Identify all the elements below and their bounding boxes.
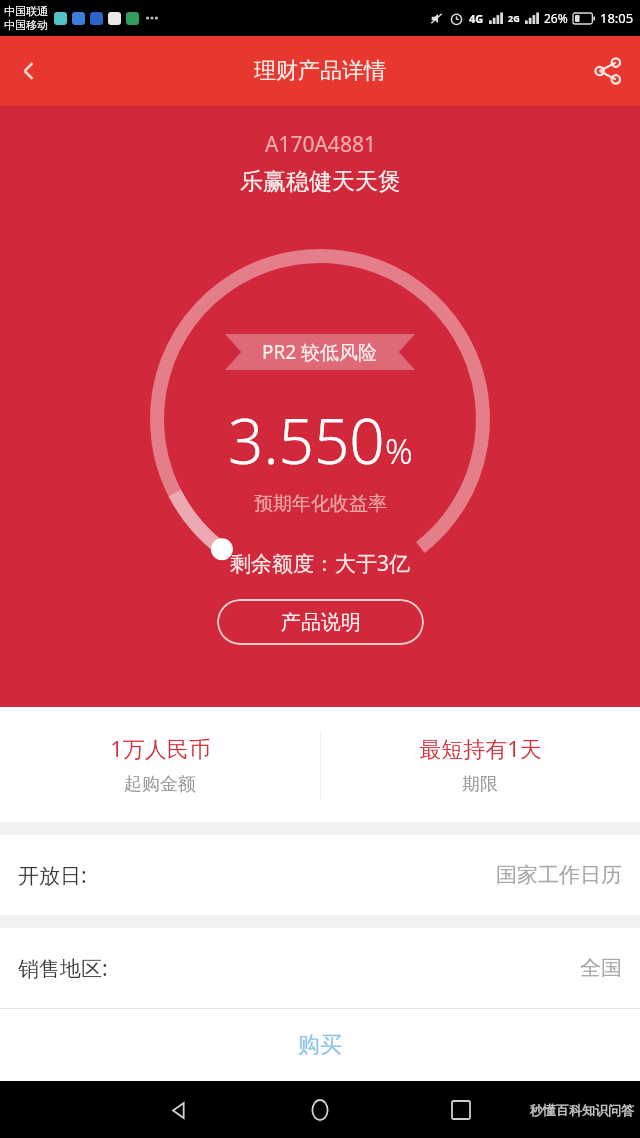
- staticText: 4G: [469, 11, 484, 26]
- staticText: 中国移动: [4, 18, 48, 32]
- button[interactable]: Share: [576, 39, 640, 103]
- button[interactable]: 销售地区:: [0, 928, 640, 1008]
- staticText: 中国联通: [4, 4, 48, 18]
- button[interactable]: 开放日:: [0, 835, 640, 915]
- staticText: 预期年化收益率: [254, 492, 387, 516]
- button[interactable]: Recent apps: [439, 1088, 483, 1132]
- staticText: PR2 较低风险: [262, 339, 378, 365]
- staticText: 26%: [544, 10, 568, 26]
- staticText: 18:05: [600, 9, 634, 27]
- button[interactable]: 1万人民币: [0, 707, 320, 822]
- button[interactable]: 最短持有1天: [320, 707, 640, 822]
- button[interactable]: Back: [0, 42, 58, 100]
- staticText: 剩余额度：大于3亿: [230, 549, 411, 578]
- button[interactable]: Home: [298, 1088, 342, 1132]
- staticText: A170A4881: [265, 130, 376, 159]
- staticText: 最短持有1天: [419, 733, 542, 763]
- button[interactable]: Back: [157, 1088, 201, 1132]
- button[interactable]: 购买: [0, 1009, 640, 1081]
- staticText: 期限: [462, 773, 498, 796]
- staticText: 秒懂百科知识问答: [530, 1102, 634, 1118]
- staticText: 产品说明: [281, 610, 361, 635]
- staticText: 开放日:: [18, 861, 87, 890]
- staticText: 3.550: [228, 398, 385, 482]
- staticText: 全国: [580, 955, 622, 981]
- staticText: %: [385, 428, 413, 474]
- staticText: 乐赢稳健天天煲: [240, 167, 401, 196]
- staticText: 1万人民币: [110, 733, 211, 763]
- staticText: 国家工作日历: [496, 862, 622, 888]
- staticText: 销售地区:: [18, 954, 108, 983]
- staticText: 2G: [508, 12, 520, 24]
- staticText: 起购金额: [124, 773, 196, 796]
- button[interactable]: 产品说明: [217, 599, 424, 645]
- staticText: 购买: [298, 1031, 342, 1059]
- staticText: 理财产品详情: [254, 57, 386, 85]
